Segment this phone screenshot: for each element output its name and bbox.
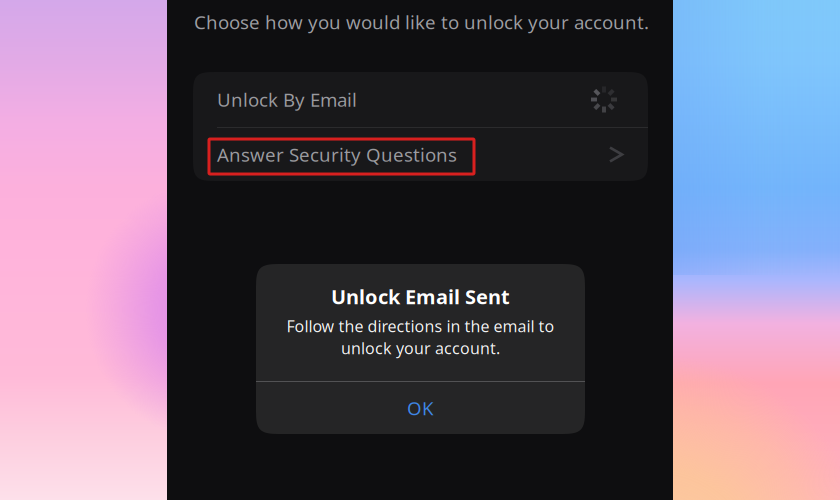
button[interactable]: OK xyxy=(256,382,585,434)
staticText: Unlock Email Sent xyxy=(331,283,510,310)
staticText: Follow the directions in the email to xyxy=(286,315,554,337)
staticText: unlock your account. xyxy=(341,337,500,359)
button[interactable]: Answer Security Questions xyxy=(193,128,648,181)
staticText: Choose how you would like to unlock your… xyxy=(194,10,649,34)
staticText: Unlock By Email xyxy=(217,87,357,112)
staticText: OK xyxy=(407,396,434,420)
button[interactable]: Unlock By Email xyxy=(193,72,648,127)
staticText: Answer Security Questions xyxy=(217,142,457,167)
